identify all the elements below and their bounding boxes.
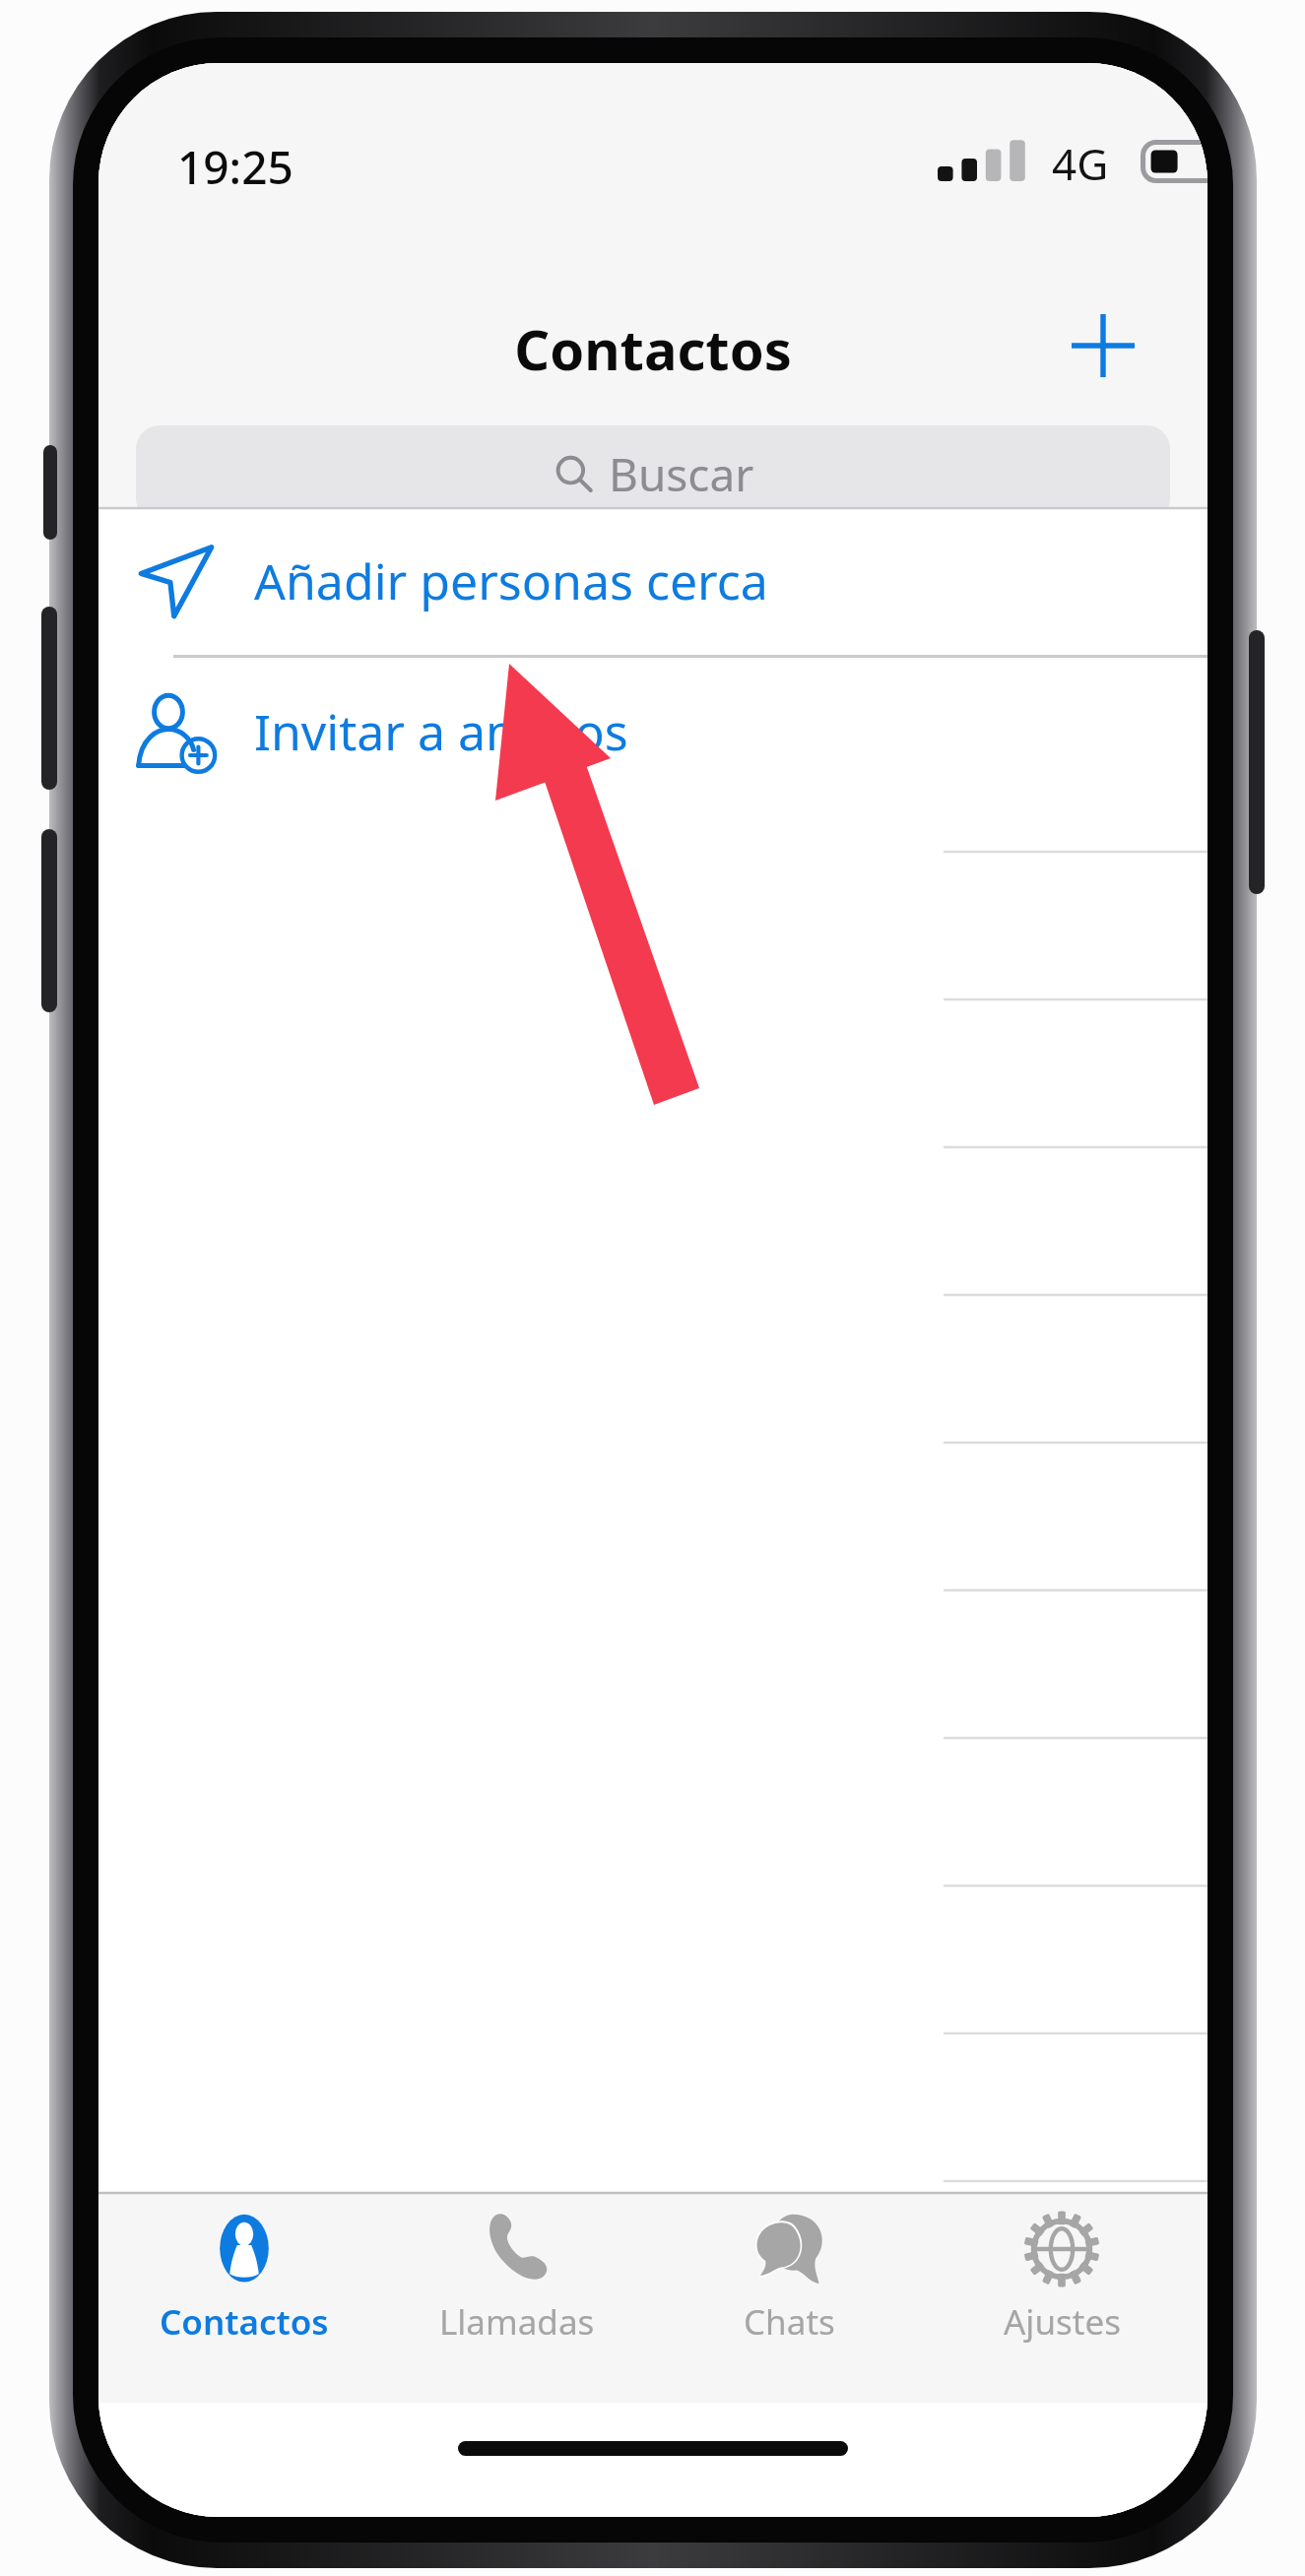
- staticText: Ajustes: [1004, 2298, 1121, 2346]
- staticText: 19:25: [177, 136, 294, 198]
- button[interactable]: Añadir personas cerca: [98, 507, 1207, 655]
- staticText: Llamadas: [439, 2298, 595, 2346]
- staticText: Invitar a amigos: [254, 698, 628, 765]
- staticText: Contactos: [98, 311, 1207, 386]
- button[interactable]: Llamadas: [391, 2210, 643, 2346]
- staticText: Añadir personas cerca: [254, 547, 768, 614]
- staticText: Chats: [744, 2298, 835, 2346]
- staticText: Contactos: [160, 2298, 329, 2346]
- staticText: Buscar: [609, 443, 754, 505]
- button[interactable]: Añadir contacto: [1042, 288, 1164, 404]
- button[interactable]: Invitar a amigos: [98, 658, 1207, 805]
- staticText: 4G: [1052, 134, 1109, 193]
- button[interactable]: Ajustes: [936, 2210, 1188, 2346]
- button[interactable]: Contactos: [118, 2210, 370, 2346]
- button[interactable]: Chats: [663, 2210, 915, 2346]
- button[interactable]: Buscar: [136, 425, 1170, 522]
